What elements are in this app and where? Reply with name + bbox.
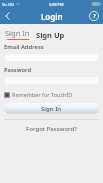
button[interactable]	[4, 76, 99, 85]
button[interactable]	[4, 53, 99, 62]
staticText: ?	[93, 12, 96, 20]
staticText: Login	[41, 11, 63, 22]
staticText: Sign Up	[36, 30, 65, 40]
staticText: 9:08 PM	[49, 2, 64, 7]
button[interactable]: Sign In	[4, 103, 99, 114]
button[interactable]: Remember for TouchID	[4, 90, 73, 99]
staticText: Sign In	[5, 28, 30, 38]
staticText: Forgot Password?	[26, 125, 77, 133]
button[interactable]: Sign In	[4, 28, 31, 40]
staticText: Sign In	[41, 105, 62, 113]
button[interactable]: Help	[85, 8, 103, 24]
button[interactable]: Forgot Password?	[4, 125, 99, 133]
button[interactable]: Back	[0, 8, 14, 24]
staticText: No SIM	[2, 2, 15, 7]
staticText: Email Address	[4, 43, 44, 51]
button[interactable]: Sign Up	[35, 30, 66, 40]
staticText: Password	[4, 66, 32, 74]
staticText: Remember for TouchID	[12, 91, 73, 98]
